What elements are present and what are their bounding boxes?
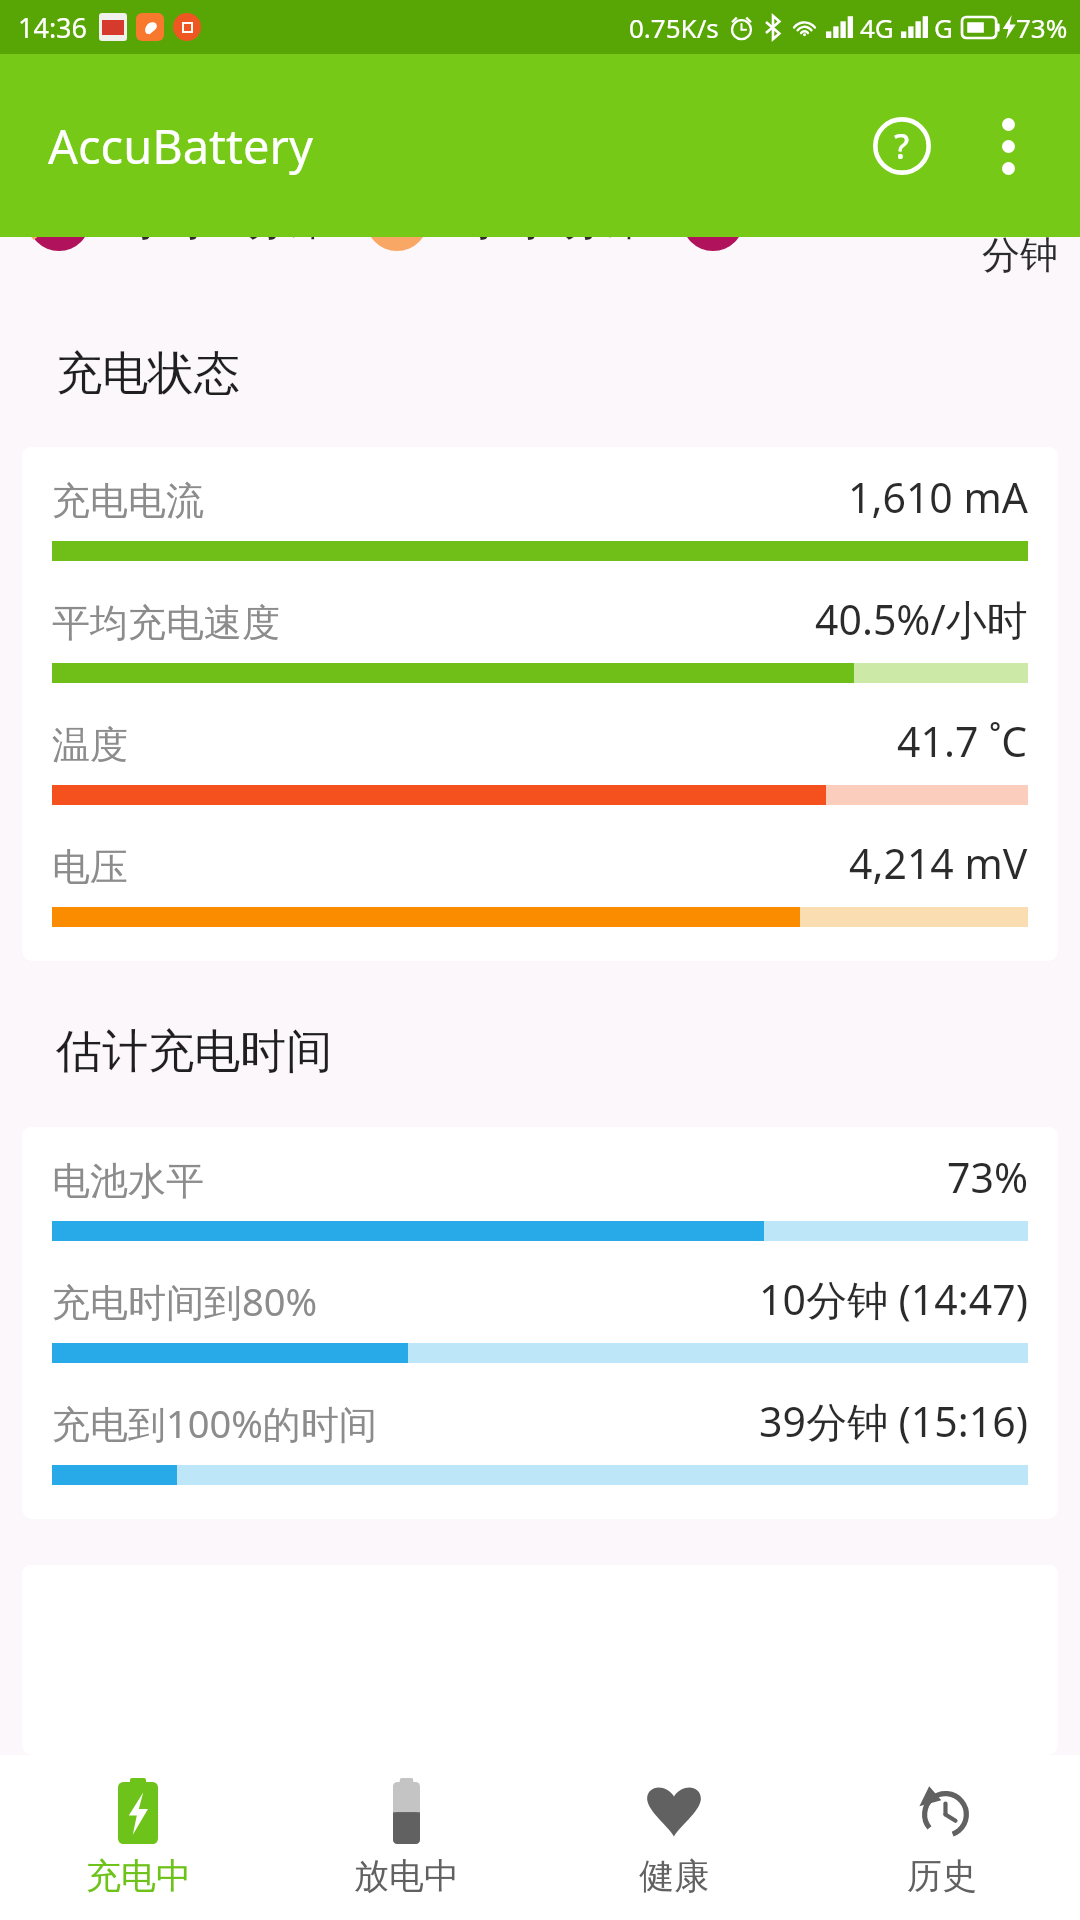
staticText: 39分钟 (15:16): [759, 1393, 1028, 1449]
staticText: 历史: [907, 1854, 977, 1898]
button[interactable]: 电池水平: [22, 1127, 1058, 1249]
staticText: G: [934, 10, 953, 45]
staticText: 健康: [639, 1854, 709, 1898]
staticText: 4,214 mV: [849, 835, 1028, 891]
staticText: ?: [894, 123, 910, 169]
button[interactable]: 历史: [812, 1755, 1072, 1920]
staticText: 14:36: [18, 9, 88, 46]
staticText: 放电中: [354, 1854, 459, 1898]
button[interactable]: 充电时间到80%: [22, 1249, 1058, 1371]
staticText: 4小时7分钟: [444, 237, 640, 246]
staticText: 估计充电时间: [56, 1023, 332, 1081]
staticText: 73%: [947, 1149, 1028, 1205]
staticText: 0.75K/s: [629, 10, 719, 45]
button[interactable]: 健康: [544, 1755, 804, 1920]
staticText: 充电电流: [52, 477, 204, 525]
staticText: 平均充电速度: [52, 599, 280, 647]
button[interactable]: 充电到100%的时间: [22, 1371, 1058, 1493]
button[interactable]: 电压: [22, 813, 1058, 935]
staticText: 充电时间到80%: [52, 1275, 318, 1327]
button[interactable]: 平均充电速度: [22, 569, 1058, 691]
staticText: 10分钟 (14:47): [759, 1271, 1028, 1327]
staticText: 电压: [52, 843, 128, 891]
staticText: 41.7 ˚C: [897, 713, 1028, 769]
staticText: 充电到100%的时间: [52, 1397, 377, 1449]
button[interactable]: 充电中: [8, 1755, 268, 1920]
staticText: 1,610 mA: [848, 469, 1028, 525]
button[interactable]: 温度: [22, 691, 1058, 813]
staticText: 充电状态: [56, 345, 240, 403]
staticText: AccuBattery: [48, 114, 313, 178]
button[interactable]: 放电中: [276, 1755, 536, 1920]
staticText: 73%: [1016, 10, 1068, 45]
button[interactable]: 充电电流: [22, 447, 1058, 569]
staticText: 充电中: [86, 1854, 191, 1898]
staticText: 4G: [860, 10, 894, 45]
button[interactable]: Help: [852, 96, 952, 196]
staticText: 40.5%/小时: [815, 591, 1028, 647]
button[interactable]: More options: [958, 96, 1058, 196]
staticText: 电池水平: [52, 1157, 204, 1205]
staticText: 温度: [52, 721, 128, 769]
staticText: 8小时44分钟: [106, 237, 324, 246]
staticText: 分钟: [982, 237, 1058, 279]
